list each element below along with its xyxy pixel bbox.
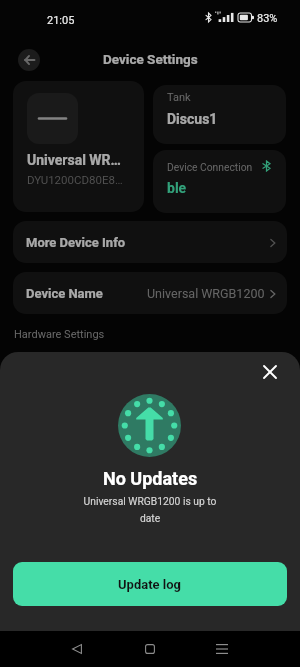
staticText: Universal WRGB1200 — [147, 286, 265, 301]
staticText: Universal WRGB1200 is up to date — [81, 495, 219, 525]
staticText: Update log — [118, 577, 182, 592]
button[interactable]: Home — [130, 631, 170, 667]
button[interactable]: Tank — [153, 85, 286, 144]
button[interactable]: Close — [257, 359, 283, 385]
staticText: 83% — [257, 12, 278, 25]
staticText: ble — [167, 180, 187, 196]
staticText: Device Settings — [103, 51, 198, 67]
staticText: 21:05 — [47, 14, 75, 27]
staticText: Tank — [167, 91, 191, 104]
button[interactable]: Update log — [13, 562, 287, 606]
button[interactable]: Back — [58, 631, 98, 667]
button[interactable]: Device Name — [13, 272, 287, 314]
button[interactable]: Universal WR… — [13, 81, 144, 212]
button[interactable]: More Device Info — [13, 221, 287, 263]
staticText: Device Name — [26, 286, 103, 301]
staticText: No Updates — [103, 468, 198, 489]
staticText: Discus1 — [167, 111, 218, 127]
staticText: More Device Info — [26, 235, 126, 250]
button[interactable]: Back — [18, 49, 40, 71]
staticText: Device Connection — [167, 161, 253, 173]
button[interactable]: Device Connection — [153, 150, 286, 213]
button[interactable]: Recents — [202, 631, 242, 667]
staticText: DYU1200CD80E8… — [27, 173, 123, 186]
staticText: Hardware Settings — [14, 328, 105, 341]
staticText: Universal WR… — [27, 152, 121, 168]
